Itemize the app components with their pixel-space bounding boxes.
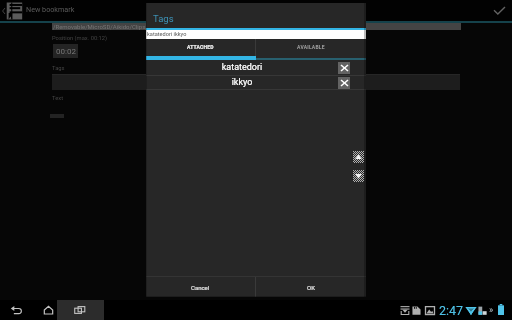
button[interactable]: ATTACHED [146, 39, 255, 56]
button[interactable]: Cancel [146, 277, 255, 297]
staticText: OK [307, 284, 315, 291]
staticText: Position (max. 00:12) [52, 35, 108, 42]
staticText: Text [52, 95, 64, 102]
button[interactable]: Home [35, 300, 61, 320]
staticText: /Removable/MicroSD/Aikido/Clips/K [53, 23, 152, 30]
button[interactable]: Navigate up [0, 0, 26, 21]
button[interactable]: katatedori [146, 60, 366, 75]
staticText: 00:02 [56, 47, 76, 56]
button[interactable]: ikkyo [146, 76, 366, 89]
staticText: ikkyo [146, 77, 338, 88]
button[interactable]: AVAILABLE [256, 39, 366, 56]
staticText: Tags [153, 13, 174, 24]
staticText: ATTACHED [187, 44, 214, 50]
button[interactable]: Back [3, 300, 29, 320]
button[interactable]: Done [486, 0, 512, 21]
staticText: Tags [52, 65, 65, 72]
staticText: katatedori ikkyo [147, 31, 187, 38]
staticText: katatedori [146, 62, 338, 73]
staticText: 2:47 [439, 303, 464, 318]
button[interactable]: Remove ikkyo [338, 76, 366, 89]
button[interactable]: Remove katatedori [338, 60, 366, 75]
staticText: AVAILABLE [297, 44, 325, 50]
staticText: New bookmark [26, 5, 75, 13]
button[interactable]: Recent apps [65, 300, 95, 320]
staticText: Cancel [191, 284, 210, 291]
button[interactable]: OK [256, 277, 366, 297]
staticText: » [489, 305, 494, 316]
